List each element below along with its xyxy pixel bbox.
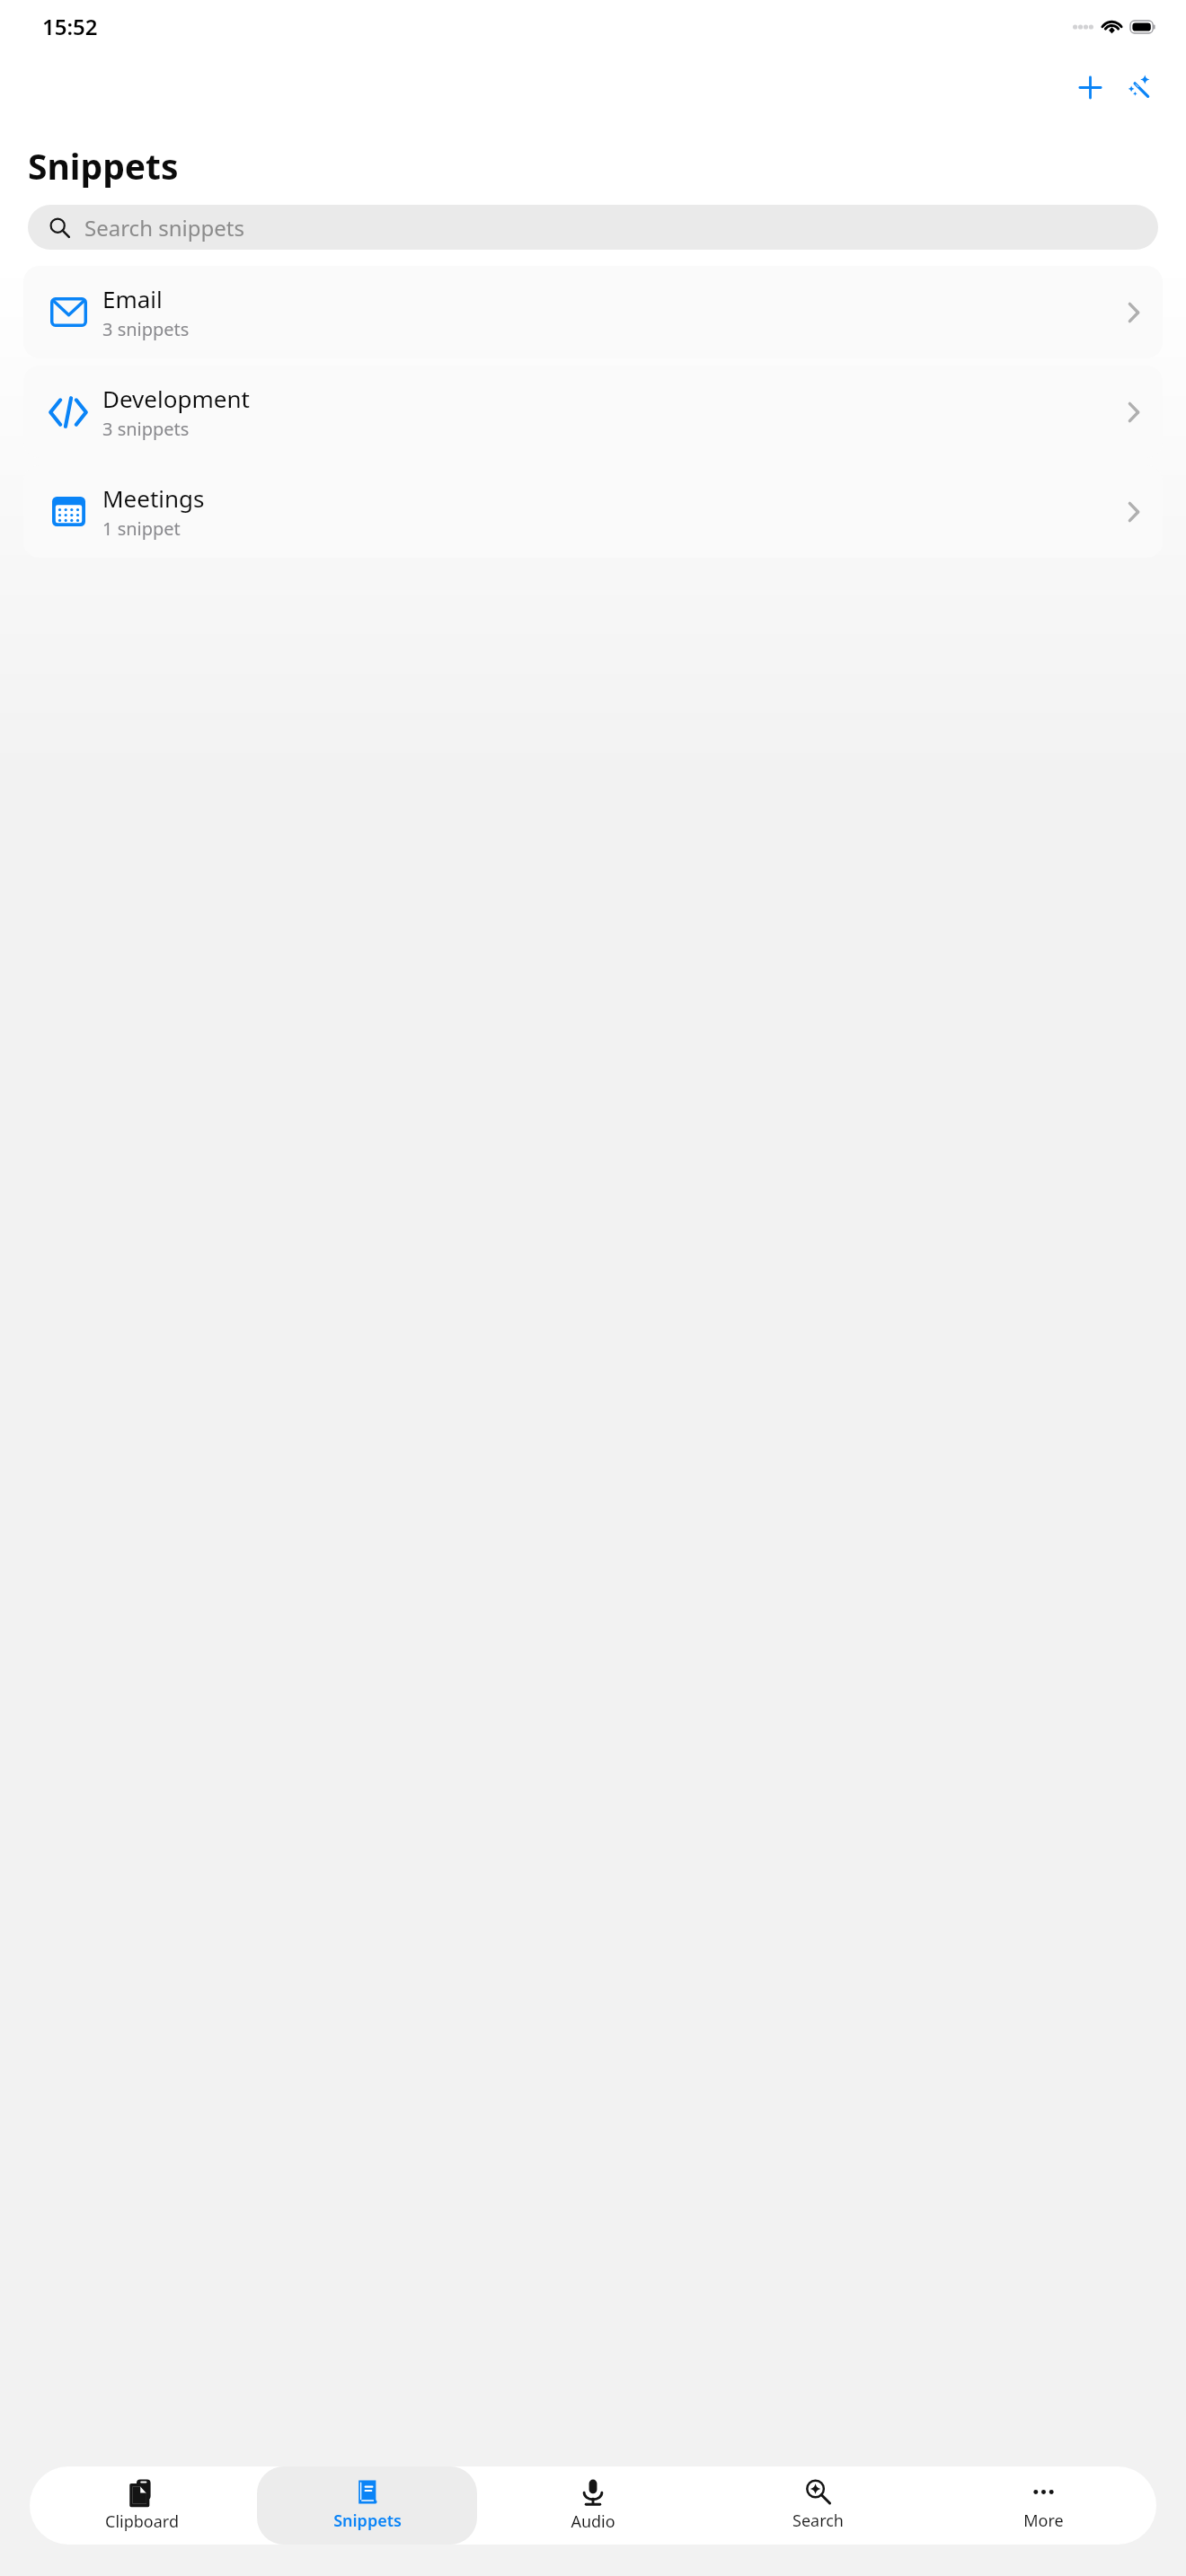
- staticText: Clipboard: [105, 2510, 179, 2533]
- button[interactable]: Add snippet: [1067, 61, 1114, 113]
- staticText: Snippets: [28, 142, 179, 190]
- staticText: 1 snippet: [102, 516, 181, 541]
- button[interactable]: Audio: [482, 2466, 703, 2545]
- button[interactable]: Snippets: [257, 2466, 477, 2545]
- button[interactable]: Meetings: [23, 465, 1163, 558]
- button[interactable]: Clipboard: [32, 2466, 252, 2545]
- staticText: 3 snippets: [102, 317, 190, 341]
- button[interactable]: Development: [23, 366, 1163, 458]
- staticText: 15:52: [42, 12, 98, 41]
- button[interactable]: Search: [708, 2466, 928, 2545]
- button[interactable]: Email: [23, 266, 1163, 358]
- staticText: More: [1023, 2510, 1064, 2532]
- staticText: Search snippets: [84, 213, 244, 243]
- staticText: Meetings: [102, 482, 205, 514]
- staticText: Development: [102, 383, 250, 414]
- button[interactable]: Search snippets: [28, 205, 1158, 250]
- button[interactable]: Magic generate: [1114, 61, 1163, 113]
- staticText: Audio: [571, 2510, 615, 2533]
- staticText: Search: [792, 2510, 844, 2532]
- staticText: Snippets: [333, 2510, 402, 2532]
- button[interactable]: More: [934, 2466, 1154, 2545]
- staticText: Email: [102, 283, 163, 314]
- staticText: 3 snippets: [102, 417, 190, 441]
